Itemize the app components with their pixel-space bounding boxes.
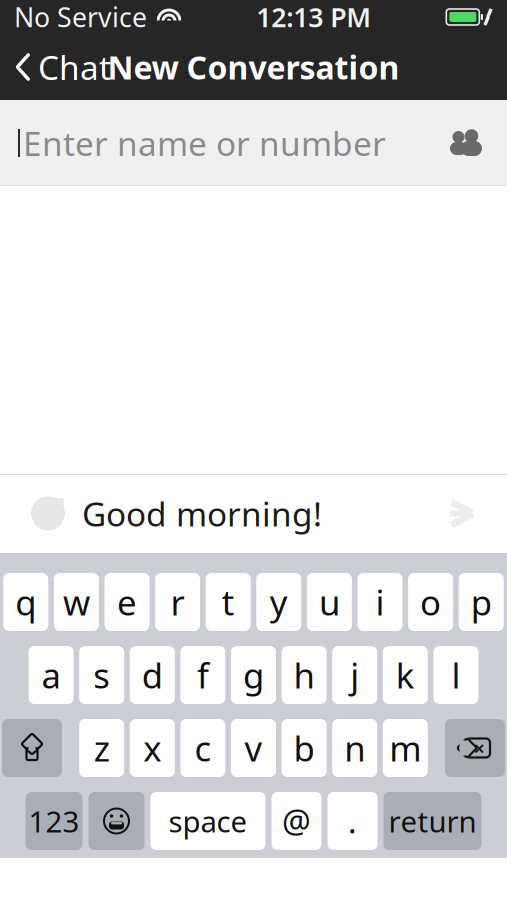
button[interactable]: p [459, 573, 504, 631]
button[interactable]: . [327, 792, 377, 850]
button[interactable]: l [433, 646, 478, 704]
button[interactable]: s [79, 646, 124, 704]
staticText: f [197, 652, 209, 698]
button[interactable]: c [180, 719, 225, 777]
staticText: Enter name or number [23, 121, 386, 165]
staticText: return [388, 801, 476, 840]
staticText: u [319, 579, 340, 625]
button[interactable]: @ [271, 792, 321, 850]
staticText: d [142, 652, 163, 698]
staticText: @ [282, 800, 311, 842]
button[interactable]: q [3, 573, 48, 631]
button[interactable]: Shift [2, 719, 62, 777]
staticText: b [294, 725, 315, 771]
button[interactable]: g [231, 646, 276, 704]
staticText: g [243, 652, 264, 698]
staticText: y [270, 579, 288, 625]
button[interactable]: 123 [25, 792, 82, 850]
button[interactable]: k [383, 646, 428, 704]
button[interactable]: z [79, 719, 124, 777]
button[interactable]: space [150, 792, 265, 850]
button[interactable]: a [29, 646, 74, 704]
staticText: v [244, 725, 262, 771]
button[interactable]: Choose contact [439, 103, 495, 183]
staticText: Chat [38, 45, 111, 89]
button[interactable]: j [332, 646, 377, 704]
button[interactable]: i [357, 573, 402, 631]
button[interactable]: r [155, 573, 200, 631]
staticText: space [168, 801, 247, 840]
staticText: No Service [14, 0, 147, 35]
staticText: z [94, 725, 110, 771]
button[interactable]: Send [435, 483, 491, 543]
button[interactable]: v [231, 719, 276, 777]
staticText: o [420, 579, 441, 625]
staticText: t [222, 579, 235, 625]
staticText: m [389, 725, 421, 771]
button[interactable]: f [180, 646, 225, 704]
button[interactable]: y [256, 573, 301, 631]
staticText: e [117, 579, 137, 625]
staticText: x [143, 725, 161, 771]
staticText: n [344, 725, 365, 771]
staticText: r [171, 579, 185, 625]
staticText: × [473, 735, 484, 761]
button[interactable]: return [383, 792, 481, 850]
button[interactable]: t [206, 573, 251, 631]
staticText: Good morning! [82, 491, 322, 536]
button[interactable]: m [383, 719, 428, 777]
staticText: c [194, 725, 211, 771]
staticText: h [294, 652, 315, 698]
button[interactable]: Delete [445, 719, 505, 777]
button[interactable]: o [408, 573, 453, 631]
button[interactable]: e [104, 573, 149, 631]
staticText: . [348, 800, 357, 842]
button[interactable]: h [282, 646, 327, 704]
button[interactable]: x [130, 719, 175, 777]
staticText: a [42, 652, 61, 698]
staticText: q [15, 579, 36, 625]
button[interactable]: d [130, 646, 175, 704]
staticText: i [375, 579, 384, 625]
staticText: 12:13 PM [256, 0, 371, 35]
button[interactable]: w [54, 573, 99, 631]
staticText: 123 [28, 801, 79, 840]
staticText: s [93, 652, 110, 698]
staticText: p [471, 579, 492, 625]
staticText: k [396, 652, 415, 698]
button[interactable]: u [307, 573, 352, 631]
button[interactable]: Chat [0, 34, 125, 100]
staticText: j [350, 652, 359, 698]
button[interactable]: n [332, 719, 377, 777]
staticText: New Conversation [107, 46, 399, 88]
staticText: l [451, 652, 460, 698]
button[interactable]: Emoji [88, 792, 144, 850]
staticText: w [63, 579, 90, 625]
button[interactable]: b [282, 719, 327, 777]
